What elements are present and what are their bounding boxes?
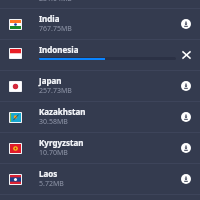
button[interactable]: Kyrgyzstan [0,133,200,163]
staticText: 10.70MB [39,148,68,158]
button[interactable]: India [0,9,200,39]
staticText: 231.04MB [39,0,72,2]
button[interactable]: Download [175,137,197,159]
button[interactable]: Japan [0,71,200,101]
staticText: 30.58MB [39,117,68,127]
staticText: India [39,13,60,24]
button[interactable]: Download [175,75,197,97]
staticText: 767.75MB [39,24,72,34]
button[interactable]: Download [175,168,197,190]
button[interactable]: Download [175,106,197,128]
button[interactable]: Download [175,13,197,35]
staticText: Japan [39,75,62,86]
staticText: Kazakhstan [39,106,86,117]
staticText: Kyrgyzstan [39,137,84,148]
button[interactable]: Cancel download [175,44,197,66]
button[interactable]: Indonesia [0,40,200,70]
staticText: 5.72MB [39,179,64,189]
staticText: Laos [39,168,58,179]
staticText: Indonesia [39,44,79,55]
button[interactable]: Kazakhstan [0,102,200,132]
button[interactable]: Laos [0,164,200,194]
staticText: 257.73MB [39,86,72,96]
